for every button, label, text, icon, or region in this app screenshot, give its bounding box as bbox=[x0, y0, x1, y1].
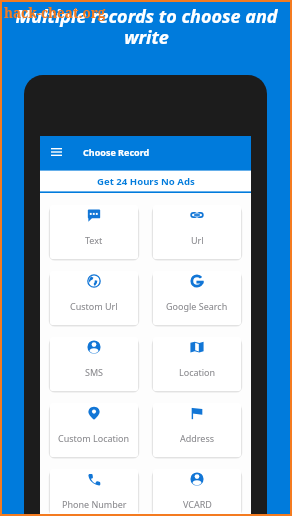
button[interactable]: SMS bbox=[50, 337, 138, 391]
staticText: Custom Location bbox=[58, 432, 130, 444]
button[interactable]: Custom Location bbox=[50, 403, 138, 457]
staticText: Address bbox=[180, 432, 215, 444]
staticText: Google Search bbox=[166, 300, 228, 312]
button[interactable]: Url bbox=[153, 205, 241, 259]
staticText: Phone Number bbox=[62, 498, 127, 510]
button[interactable]: Address bbox=[153, 403, 241, 457]
staticText: VCARD bbox=[183, 498, 212, 510]
button[interactable]: Get 24 Hours No Ads bbox=[40, 169, 251, 193]
staticText: hack-cheat.org bbox=[4, 4, 106, 22]
button[interactable]: Google Search bbox=[153, 271, 241, 325]
staticText: Multiple records to choose and write bbox=[15, 4, 278, 50]
staticText: Location bbox=[179, 366, 216, 378]
button[interactable]: Phone Number bbox=[50, 469, 138, 516]
button[interactable]: Text bbox=[50, 205, 138, 259]
button[interactable]: Menu bbox=[45, 141, 67, 163]
staticText: Url bbox=[191, 234, 204, 246]
button[interactable]: Custom Url bbox=[50, 271, 138, 325]
staticText: Text bbox=[85, 234, 103, 246]
staticText: Choose Record bbox=[83, 146, 150, 158]
button[interactable]: Location bbox=[153, 337, 241, 391]
button[interactable]: VCARD bbox=[153, 469, 241, 516]
staticText: Custom Url bbox=[70, 300, 118, 312]
staticText: Get 24 Hours No Ads bbox=[97, 175, 195, 188]
staticText: SMS bbox=[85, 366, 104, 378]
